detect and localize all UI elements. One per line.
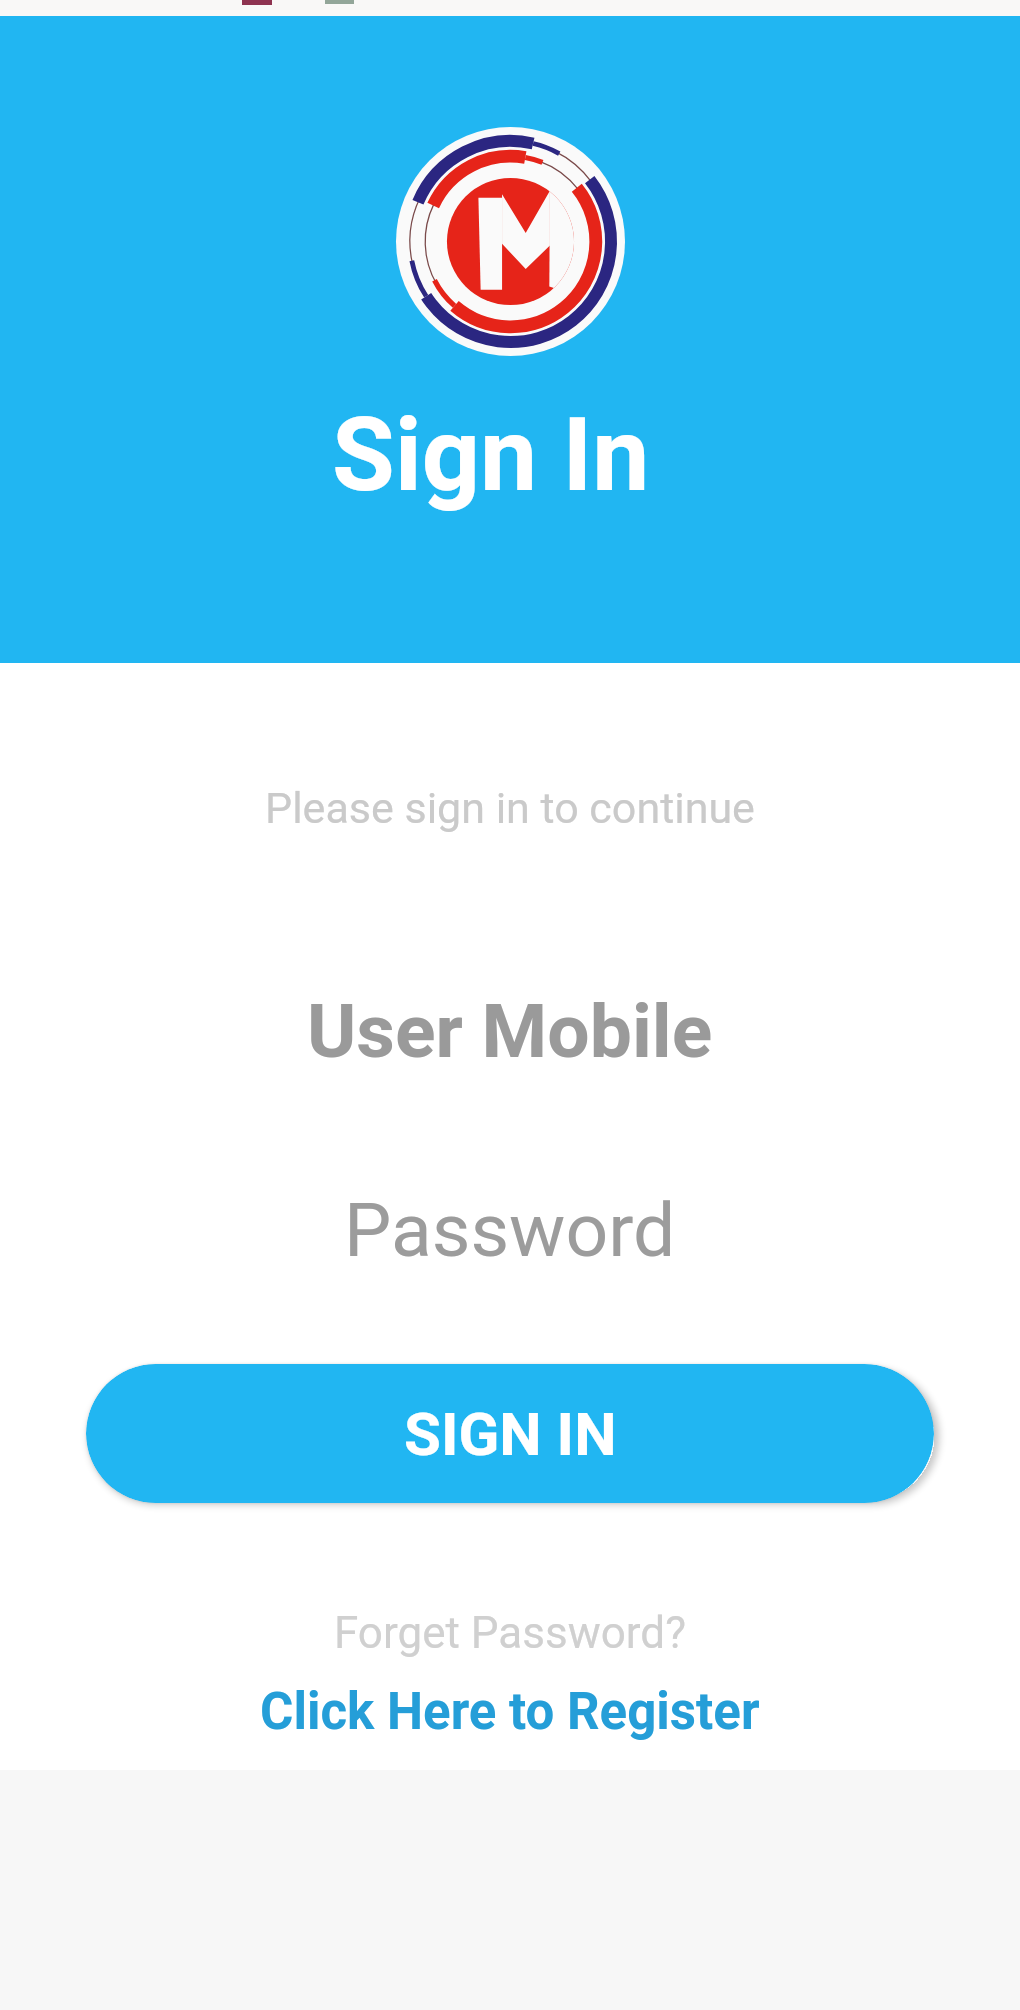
staticText: SIGN IN: [404, 1399, 617, 1469]
staticText: Please sign in to continue: [265, 783, 755, 833]
staticText: Click Here to Register: [260, 1682, 760, 1742]
button[interactable]: SIGN IN: [86, 1364, 934, 1503]
staticText: Sign In: [332, 395, 650, 515]
staticText: Forget Password?: [334, 1607, 686, 1659]
staticText: User Mobile: [307, 987, 713, 1075]
button[interactable]: Click Here to Register: [260, 1682, 760, 1742]
button[interactable]: Forget Password?: [334, 1607, 686, 1659]
staticText: Password: [344, 1186, 676, 1274]
